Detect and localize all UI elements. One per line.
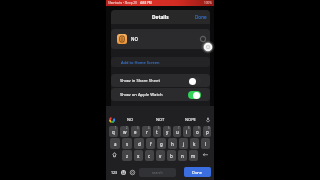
staticText: l — [205, 141, 207, 147]
button[interactable]: NOT — [145, 114, 175, 125]
button[interactable]: s — [122, 138, 132, 149]
button[interactable]: Google — [109, 117, 115, 123]
button[interactable]: d — [134, 138, 144, 149]
staticText: m — [191, 153, 196, 159]
staticText: 7 — [178, 126, 180, 130]
staticText: 0 — [208, 126, 210, 130]
button[interactable]: e — [131, 126, 140, 137]
button[interactable]: NOPE — [175, 114, 205, 125]
staticText: 8 — [188, 126, 190, 130]
button[interactable]: p — [203, 126, 211, 137]
button[interactable]: i — [183, 126, 191, 137]
button[interactable]: 123 — [110, 167, 119, 177]
staticText: Show on Apple Watch — [120, 92, 163, 98]
button[interactable]: Shift — [109, 150, 120, 161]
staticText: b — [170, 153, 173, 159]
button[interactable]: j — [179, 138, 188, 149]
staticText: 100% — [204, 1, 212, 5]
staticText: u — [176, 129, 179, 135]
button[interactable]: t — [153, 126, 161, 137]
button[interactable]: o — [193, 126, 201, 137]
staticText: e — [134, 129, 137, 135]
button[interactable]: g — [157, 138, 166, 149]
staticText: r — [146, 129, 148, 135]
staticText: 9 — [198, 126, 200, 130]
staticText: search — [152, 170, 163, 175]
staticText: 5 — [158, 126, 160, 130]
staticText: Shortcuts • Sleep 20 — [108, 1, 137, 5]
button[interactable]: f — [146, 138, 155, 149]
button[interactable]: Add to Home Screen — [111, 57, 210, 67]
staticText: 6 — [168, 126, 170, 130]
staticText: k — [193, 141, 196, 147]
button[interactable]: Show in Share Sheet — [111, 74, 210, 87]
staticText: p — [206, 129, 209, 135]
button[interactable]: h — [168, 138, 177, 149]
staticText: 1 — [115, 126, 117, 130]
staticText: j — [183, 141, 185, 147]
staticText: h — [171, 141, 174, 147]
staticText: Show in Share Sheet — [120, 78, 160, 84]
staticText: z — [126, 153, 129, 159]
staticText: w — [123, 129, 127, 135]
staticText: Done — [192, 170, 203, 175]
button[interactable]: NO — [111, 29, 210, 49]
button[interactable]: Emoji — [119, 167, 128, 177]
staticText: n — [181, 153, 184, 159]
button[interactable]: k — [190, 138, 199, 149]
button[interactable]: Voice input — [205, 117, 211, 123]
button[interactable]: Space — [139, 168, 176, 177]
staticText: NOPE — [185, 117, 196, 122]
button[interactable]: q — [109, 126, 118, 137]
staticText: Add to Home Screen — [121, 60, 160, 65]
button[interactable]: x — [134, 150, 143, 161]
staticText: Done — [195, 14, 207, 20]
staticText: a — [114, 141, 117, 147]
button[interactable]: z — [122, 150, 132, 161]
staticText: x — [137, 153, 140, 159]
button[interactable]: Backspace — [200, 150, 211, 161]
staticText: d — [138, 141, 141, 147]
button[interactable]: u — [173, 126, 181, 137]
button[interactable]: m — [189, 150, 198, 161]
staticText: g — [160, 141, 163, 147]
staticText: c — [148, 153, 151, 159]
staticText: Details — [152, 14, 169, 21]
staticText: 2 — [126, 126, 128, 130]
button[interactable]: b — [167, 150, 176, 161]
button[interactable]: a — [110, 138, 120, 149]
button[interactable]: Settings — [128, 167, 137, 177]
button[interactable]: n — [178, 150, 187, 161]
staticText: 3 — [137, 126, 139, 130]
button[interactable]: NO — [115, 114, 145, 125]
staticText: 4 — [148, 126, 150, 130]
button[interactable]: v — [156, 150, 165, 161]
button[interactable]: w — [120, 126, 129, 137]
staticText: v — [159, 153, 162, 159]
staticText: s — [126, 141, 129, 147]
button[interactable]: l — [201, 138, 210, 149]
staticText: y — [166, 129, 169, 135]
button[interactable]: Done — [184, 167, 211, 177]
staticText: f — [150, 141, 152, 147]
staticText: NO — [131, 36, 138, 42]
staticText: 123 — [111, 170, 118, 175]
button[interactable]: r — [142, 126, 151, 137]
staticText: o — [196, 129, 199, 135]
staticText: NOT — [156, 117, 165, 122]
button[interactable]: Done — [192, 12, 210, 22]
staticText: 4:58 PM — [140, 1, 152, 5]
staticText: i — [186, 129, 188, 135]
button[interactable]: y — [163, 126, 171, 137]
button[interactable]: Show on Apple Watch — [111, 88, 210, 101]
button[interactable]: c — [145, 150, 154, 161]
staticText: NO — [127, 117, 134, 122]
staticText: q — [112, 129, 115, 135]
staticText: t — [156, 129, 158, 135]
